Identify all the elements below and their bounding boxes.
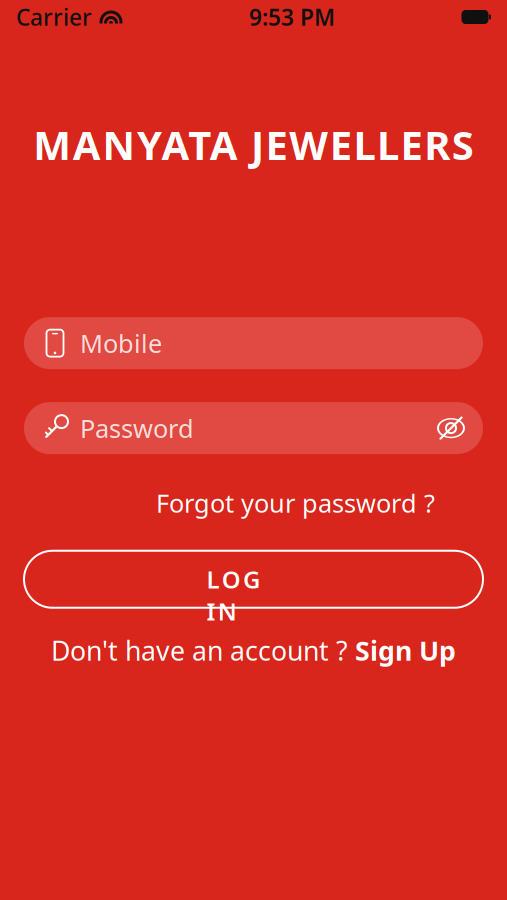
button[interactable]: Forgot your password ? — [156, 482, 435, 524]
staticText: MANYATA JEWELLERS — [33, 118, 474, 171]
staticText: LOG IN — [206, 563, 300, 595]
staticText: Password — [80, 411, 194, 445]
staticText: Mobile — [80, 326, 162, 360]
button[interactable]: LOG IN — [24, 551, 483, 608]
staticText: Don't have an account ? — [51, 633, 348, 668]
button[interactable]: Don't have an account ? — [0, 628, 507, 673]
staticText: 9:53 PM — [249, 2, 335, 32]
staticText: Forgot your password ? — [156, 486, 435, 520]
staticText: Sign Up — [355, 633, 456, 668]
staticText: Carrier — [16, 2, 92, 32]
button[interactable]: Show password — [431, 408, 471, 448]
